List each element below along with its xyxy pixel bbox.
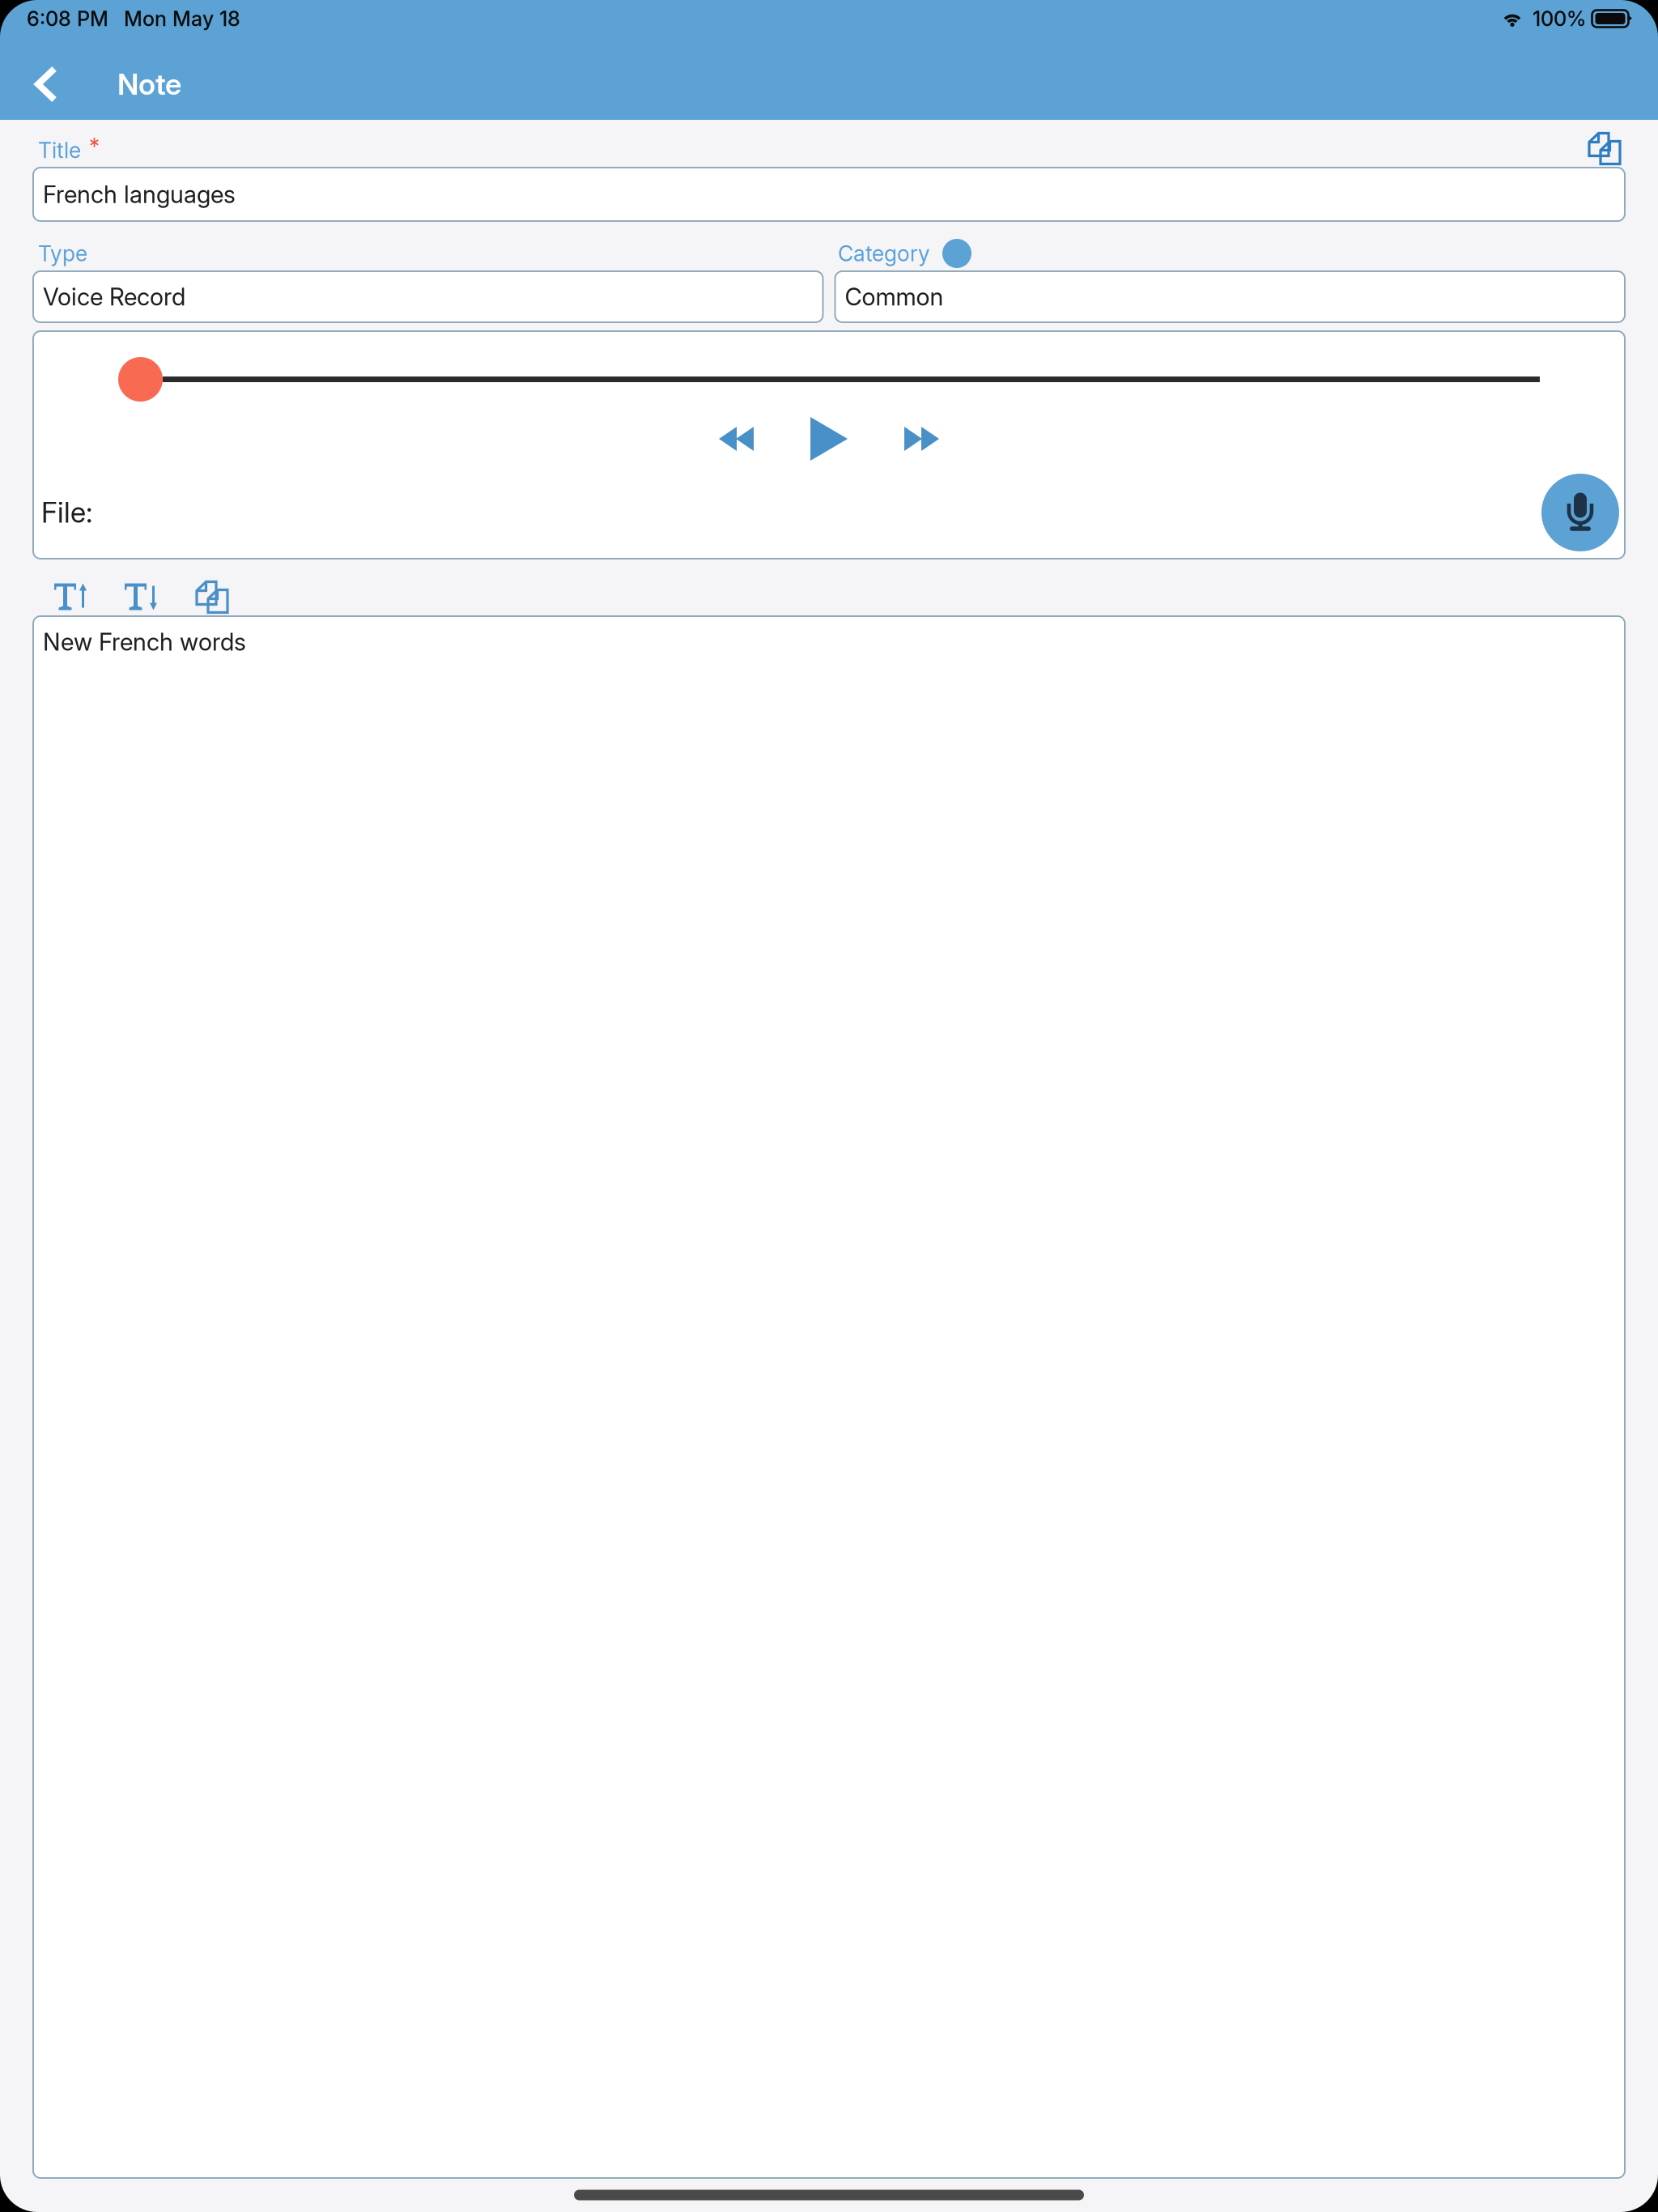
button[interactable]: Copy note — [195, 580, 229, 614]
staticText: Mon May 18 — [124, 6, 240, 31]
staticText: Note — [117, 67, 181, 102]
button[interactable]: Copy title — [1588, 132, 1622, 166]
button[interactable]: Increase text size — [53, 583, 87, 612]
staticText: Title — [38, 137, 81, 163]
staticText: French languages — [43, 180, 236, 209]
staticText: File: — [41, 496, 92, 529]
staticText: 6:08 PM — [27, 6, 108, 31]
staticText: 100% — [1533, 6, 1586, 31]
button[interactable]: Record — [1541, 474, 1619, 551]
staticText: Common — [845, 282, 944, 311]
staticText: Category — [838, 240, 930, 267]
staticText: Type — [38, 240, 87, 267]
button[interactable]: Decrease text size — [124, 583, 158, 612]
button[interactable]: Play — [808, 416, 850, 462]
staticText: New French words — [43, 627, 246, 656]
button[interactable]: Rewind — [718, 426, 755, 452]
staticText: * — [89, 133, 100, 159]
button[interactable]: Fast forward — [903, 426, 940, 452]
staticText: Voice Record — [43, 282, 185, 311]
button[interactable]: Back — [0, 43, 75, 125]
